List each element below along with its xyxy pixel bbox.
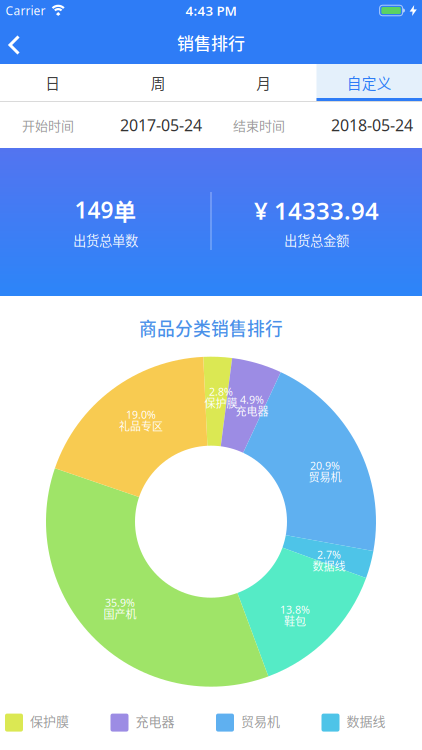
staticText: 结束时间 xyxy=(233,116,285,134)
staticText: 出货总金额 xyxy=(284,230,349,250)
staticText: 充电器 xyxy=(135,711,174,730)
button[interactable]: 贸易机 xyxy=(211,713,316,732)
button[interactable]: 结束时间 xyxy=(211,102,422,148)
staticText: 贸易机 xyxy=(241,711,280,730)
button[interactable]: 数据线 xyxy=(316,713,422,732)
staticText: Carrier xyxy=(5,2,45,18)
staticText: 充电器 xyxy=(235,403,268,419)
staticText: 销售排行 xyxy=(177,30,245,55)
button[interactable]: 周 xyxy=(105,64,211,101)
staticText: 2017-05-24 xyxy=(120,114,202,136)
staticText: 月 xyxy=(256,72,271,93)
staticText: 贸易机 xyxy=(308,469,341,485)
staticText: 商品分类销售排行 xyxy=(139,315,283,341)
staticText: 数据线 xyxy=(346,711,385,730)
staticText: 35.9% xyxy=(105,596,135,610)
staticText: 自定义 xyxy=(347,72,392,93)
button[interactable]: 充电器 xyxy=(105,713,211,732)
staticText: 2018-05-24 xyxy=(331,114,413,136)
staticText: 国产机 xyxy=(103,606,136,622)
button[interactable]: Back xyxy=(0,23,34,61)
staticText: 周 xyxy=(151,72,166,93)
staticText: 2.8% xyxy=(209,385,233,399)
button[interactable]: 月 xyxy=(211,64,316,101)
staticText: 13.8% xyxy=(280,603,310,617)
staticText: 149单 xyxy=(74,194,136,226)
staticText: 保护膜 xyxy=(204,395,237,411)
staticText: 19.0% xyxy=(126,408,156,422)
staticText: 数据线 xyxy=(312,558,345,574)
button[interactable]: 保护膜 xyxy=(0,713,105,732)
staticText: 4.9% xyxy=(240,393,264,407)
staticText: 鞋包 xyxy=(284,613,306,629)
staticText: 2.7% xyxy=(317,548,341,562)
button[interactable]: 日 xyxy=(0,64,105,101)
staticText: 出货总单数 xyxy=(73,230,138,250)
button[interactable]: 开始时间 xyxy=(0,102,211,148)
staticText: 日 xyxy=(45,72,60,93)
staticText: 开始时间 xyxy=(22,116,74,134)
staticText: 保护膜 xyxy=(30,711,69,730)
button[interactable]: 自定义 xyxy=(316,64,422,101)
staticText: 4:43 PM xyxy=(185,2,236,19)
staticText: ¥ 14333.94 xyxy=(254,194,379,226)
staticText: 20.9% xyxy=(310,459,340,473)
staticText: 礼品专区 xyxy=(119,418,163,434)
